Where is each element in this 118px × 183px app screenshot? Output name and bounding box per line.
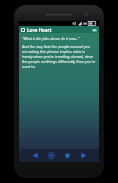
button[interactable]: Refresh [45, 149, 57, 162]
staticText: And the way that the people around you a… [22, 44, 96, 69]
staticText: Love Heart [27, 27, 91, 33]
button[interactable]: Previous [29, 149, 41, 162]
button[interactable]: Next [77, 149, 89, 162]
button[interactable]: Favourite [61, 149, 73, 162]
button[interactable]: Love Heart [19, 26, 99, 33]
staticText: "What is the joke, do we do it now…" [22, 36, 80, 41]
button[interactable]: Share [91, 27, 97, 33]
